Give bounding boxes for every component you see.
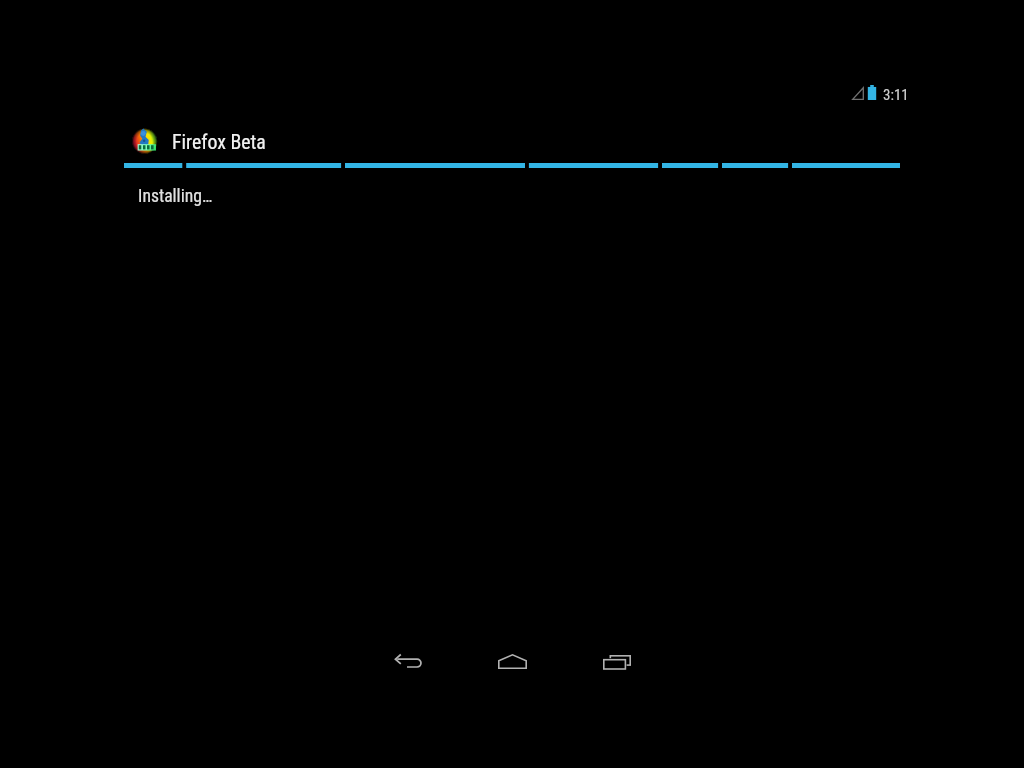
staticText: 3:11 [883, 86, 909, 104]
staticText: Firefox Beta [172, 131, 266, 154]
button[interactable]: Back [372, 638, 444, 682]
button[interactable]: Recent apps [581, 638, 653, 682]
button[interactable]: Home [476, 638, 548, 682]
staticText: Installing… [138, 186, 213, 207]
